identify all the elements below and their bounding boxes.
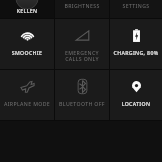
button[interactable]: User Kellen (0, 0, 54, 18)
button[interactable]: LOCATION (110, 70, 162, 120)
button[interactable]: BRIGHTNESS (55, 0, 109, 18)
staticText: SMOOCHIE (2, 49, 52, 56)
staticText: EMERGENCY CALLS ONLY (57, 49, 107, 63)
button[interactable]: Wi-Fi SMOOCHIE (0, 19, 54, 69)
button[interactable]: AIRPLANE MODE (0, 70, 54, 120)
button[interactable]: SETTINGS (110, 0, 162, 18)
staticText: BRIGHTNESS (55, 2, 109, 9)
button[interactable]: Battery charging 80 percent (110, 19, 162, 69)
staticText: CHARGING, 80% (112, 49, 160, 56)
button[interactable]: BLUETOOTH OFF (55, 70, 109, 120)
staticText: SETTINGS (110, 2, 162, 9)
button[interactable]: Mobile data (55, 19, 109, 69)
staticText: LOCATION (112, 100, 160, 107)
staticText: BLUETOOTH OFF (57, 100, 107, 107)
staticText: KELLEN (0, 7, 54, 14)
staticText: AIRPLANE MODE (2, 100, 52, 107)
